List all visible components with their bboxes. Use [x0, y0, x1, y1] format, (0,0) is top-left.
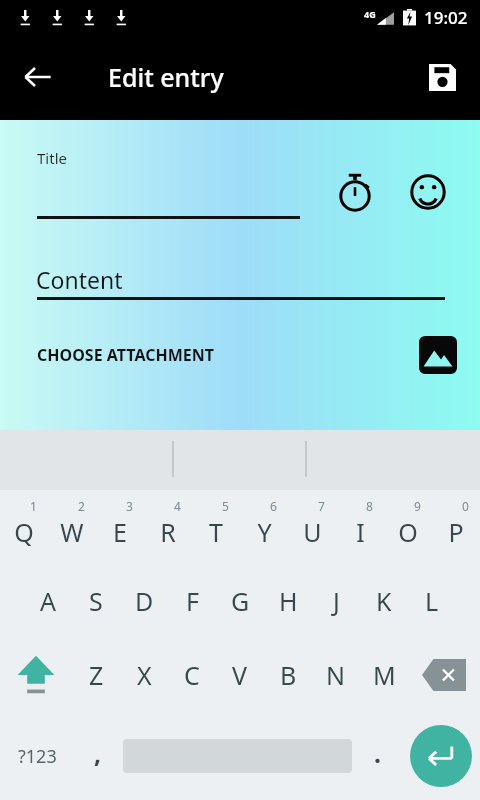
- staticText: O: [398, 515, 418, 549]
- staticText: CHOOSE ATTACHMENT: [37, 344, 214, 366]
- button[interactable]: Z: [72, 638, 120, 712]
- staticText: .: [374, 736, 382, 770]
- button[interactable]: W: [48, 490, 96, 564]
- button[interactable]: N: [312, 638, 360, 712]
- button[interactable]: Y: [240, 490, 288, 564]
- staticText: 19:02: [424, 6, 468, 29]
- staticText: Q: [14, 515, 34, 549]
- staticText: ?123: [18, 744, 57, 769]
- staticText: Y: [257, 515, 272, 549]
- staticText: N: [326, 658, 346, 692]
- staticText: F: [186, 584, 199, 618]
- button[interactable]: CHOOSE ATTACHMENT: [0, 325, 480, 385]
- staticText: S: [89, 584, 103, 618]
- staticText: 8: [366, 498, 373, 514]
- button[interactable]: P: [432, 490, 480, 564]
- button[interactable]: C: [168, 638, 216, 712]
- button[interactable]: R: [144, 490, 192, 564]
- button[interactable]: H: [264, 564, 312, 638]
- staticText: 4G: [364, 8, 376, 20]
- staticText: W: [60, 515, 84, 549]
- button[interactable]: T: [192, 490, 240, 564]
- staticText: 4: [174, 498, 181, 514]
- button[interactable]: Backspace: [408, 638, 480, 712]
- button[interactable]: L: [408, 564, 456, 638]
- button[interactable]: O: [384, 490, 432, 564]
- staticText: 2: [78, 498, 85, 514]
- button[interactable]: Insert emoji: [402, 166, 454, 218]
- staticText: 3: [126, 498, 133, 514]
- button[interactable]: M: [360, 638, 408, 712]
- button[interactable]: J: [312, 564, 360, 638]
- button[interactable]: U: [288, 490, 336, 564]
- button[interactable]: A: [24, 564, 72, 638]
- staticText: R: [160, 515, 176, 549]
- staticText: 6: [270, 498, 277, 514]
- button[interactable]: ,: [74, 712, 121, 800]
- staticText: D: [135, 584, 154, 618]
- button[interactable]: Save: [414, 49, 470, 105]
- staticText: U: [303, 515, 322, 549]
- staticText: C: [184, 658, 200, 692]
- button[interactable]: Shift: [0, 638, 72, 712]
- staticText: X: [137, 658, 152, 692]
- button[interactable]: K: [360, 564, 408, 638]
- button[interactable]: .: [354, 712, 401, 800]
- staticText: A: [40, 584, 56, 618]
- staticText: 0: [462, 498, 469, 514]
- staticText: L: [425, 584, 439, 618]
- staticText: 1: [30, 498, 37, 514]
- button[interactable]: E: [96, 490, 144, 564]
- staticText: P: [448, 515, 464, 549]
- staticText: 7: [318, 498, 325, 514]
- staticText: M: [373, 658, 396, 692]
- button[interactable]: D: [120, 564, 168, 638]
- staticText: Z: [89, 658, 104, 692]
- staticText: 9: [414, 498, 421, 514]
- staticText: J: [333, 584, 340, 618]
- staticText: V: [232, 658, 248, 692]
- staticText: Title: [37, 148, 67, 168]
- button[interactable]: X: [120, 638, 168, 712]
- button[interactable]: B: [264, 638, 312, 712]
- staticText: K: [376, 584, 392, 618]
- button[interactable]: I: [336, 490, 384, 564]
- staticText: Content: [36, 264, 123, 295]
- staticText: T: [209, 515, 223, 549]
- button[interactable]: Space: [121, 712, 354, 800]
- staticText: G: [231, 584, 250, 618]
- staticText: ,: [94, 736, 102, 770]
- button[interactable]: S: [72, 564, 120, 638]
- staticText: H: [279, 584, 298, 618]
- button[interactable]: Back: [10, 49, 66, 105]
- button[interactable]: ?123: [0, 712, 74, 800]
- staticText: I: [356, 515, 365, 549]
- staticText: Edit entry: [108, 60, 224, 94]
- button[interactable]: G: [216, 564, 264, 638]
- staticText: B: [280, 658, 297, 692]
- staticText: 5: [222, 498, 229, 514]
- button[interactable]: Timer: [329, 166, 381, 218]
- button[interactable]: Enter: [410, 725, 472, 787]
- button[interactable]: F: [168, 564, 216, 638]
- button[interactable]: V: [216, 638, 264, 712]
- staticText: E: [113, 515, 127, 549]
- button[interactable]: Q: [0, 490, 48, 564]
